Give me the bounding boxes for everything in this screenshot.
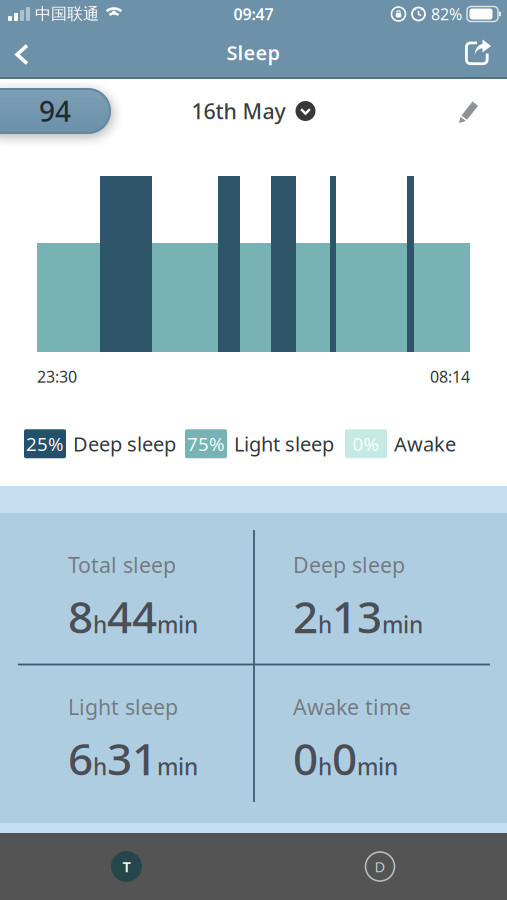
button[interactable]: Share [465, 27, 507, 77]
staticText: 09:47 [233, 3, 273, 25]
staticText: 08:14 [430, 366, 470, 387]
staticText: 8h44min [68, 587, 198, 645]
staticText: 16th May [191, 97, 285, 125]
button[interactable]: Edit [457, 98, 507, 124]
staticText: 2h13min [293, 587, 423, 645]
staticText: 中国联通 [35, 4, 99, 24]
staticText: 94 [39, 92, 71, 130]
staticText: 23:30 [37, 366, 77, 387]
button[interactable]: 94 [0, 89, 110, 133]
staticText: 0h0min [293, 729, 398, 787]
staticText: 0% [352, 431, 379, 456]
staticText: Total sleep [68, 551, 176, 579]
staticText: Awake [394, 430, 456, 457]
staticText: T [122, 857, 130, 876]
staticText: Deep sleep [293, 551, 405, 579]
staticText: 82% [431, 3, 462, 25]
button[interactable]: 16th May [191, 97, 315, 125]
staticText: Deep sleep [73, 430, 176, 457]
button[interactable]: Back [0, 28, 30, 76]
staticText: 25% [26, 431, 64, 456]
button[interactable]: Today [0, 833, 253, 900]
staticText: Light sleep [68, 693, 178, 721]
staticText: 75% [187, 431, 225, 456]
staticText: Light sleep [234, 430, 334, 457]
staticText: Sleep [226, 39, 280, 66]
staticText: D [374, 857, 385, 876]
staticText: 6h31min [68, 729, 198, 787]
button[interactable]: Day view [253, 833, 507, 900]
staticText: Awake time [293, 693, 411, 721]
